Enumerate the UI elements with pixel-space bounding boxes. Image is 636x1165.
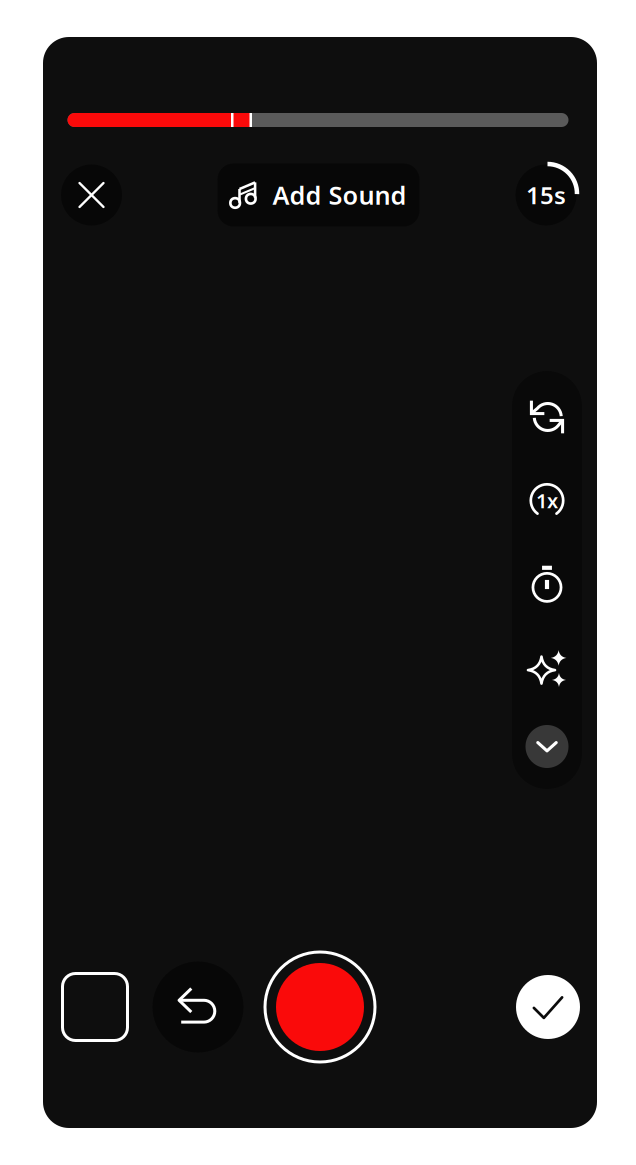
staticText: Add Sound xyxy=(272,178,406,212)
button[interactable]: More options xyxy=(512,711,582,781)
button[interactable]: Done xyxy=(516,975,580,1039)
button[interactable]: Add Sound xyxy=(217,163,419,226)
button[interactable]: Flip camera xyxy=(512,377,582,457)
button[interactable]: Recording length, 15 seconds xyxy=(514,163,578,227)
button[interactable]: Record xyxy=(265,952,375,1062)
button[interactable]: Open gallery xyxy=(62,973,127,1040)
staticText: 1x xyxy=(536,487,558,514)
button[interactable]: Undo last clip xyxy=(152,961,243,1052)
button[interactable]: Timer xyxy=(512,543,582,623)
button[interactable]: Effects xyxy=(512,628,582,708)
button[interactable]: Close xyxy=(61,164,122,225)
staticText: 15s xyxy=(526,179,566,211)
button[interactable]: Playback speed xyxy=(512,460,582,540)
